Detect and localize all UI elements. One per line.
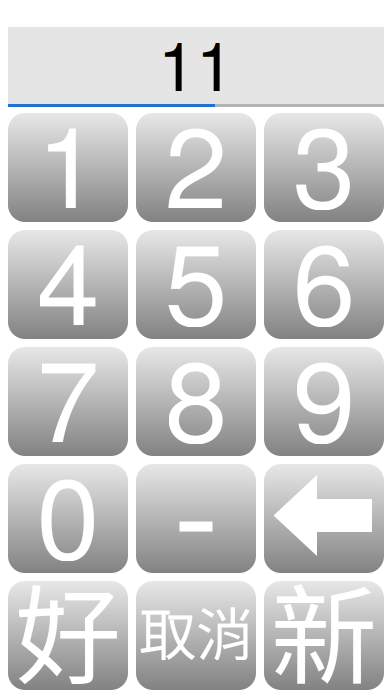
staticText: 6 <box>292 195 355 358</box>
button[interactable]: 6 <box>264 230 384 339</box>
button[interactable]: Minus <box>136 464 256 573</box>
button[interactable]: 4 <box>8 230 128 339</box>
button[interactable]: 1 <box>8 113 128 222</box>
button[interactable]: 7 <box>8 347 128 456</box>
staticText: 8 <box>164 312 227 475</box>
button[interactable]: 0 <box>8 464 128 573</box>
staticText: 7 <box>36 312 99 475</box>
button[interactable]: 8 <box>136 347 256 456</box>
staticText: 1 <box>36 78 99 241</box>
button[interactable]: 9 <box>264 347 384 456</box>
button[interactable]: 新 <box>264 581 384 690</box>
staticText: 好 <box>14 551 121 696</box>
button[interactable]: 好 <box>8 581 128 690</box>
staticText: 0 <box>36 429 99 592</box>
staticText: 3 <box>292 78 355 241</box>
button[interactable]: 3 <box>264 113 384 222</box>
staticText: 取消 <box>139 589 253 672</box>
staticText: 2 <box>164 78 227 241</box>
button[interactable]: 取消 <box>136 581 256 690</box>
button[interactable]: 2 <box>136 113 256 222</box>
staticText: 9 <box>292 312 355 475</box>
button[interactable]: Backspace <box>264 464 384 573</box>
staticText: 5 <box>164 195 227 358</box>
button[interactable]: 5 <box>136 230 256 339</box>
staticText: 新 <box>270 551 377 696</box>
staticText: 11 <box>158 13 234 110</box>
staticText: 4 <box>36 195 99 358</box>
